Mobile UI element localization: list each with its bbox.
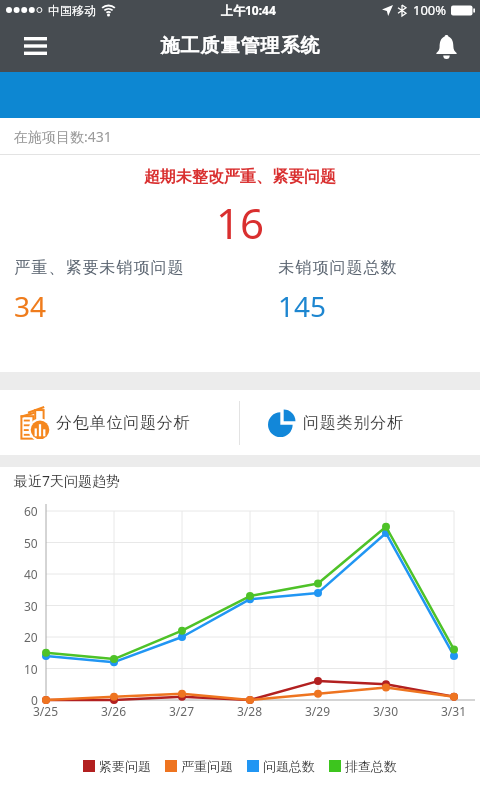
- button[interactable]: [13, 24, 57, 68]
- staticText: 16: [216, 194, 265, 251]
- staticText: 施工质量管理系统: [160, 34, 320, 58]
- staticText: 最近7天问题趋势: [14, 471, 121, 490]
- staticText: 在施项目数:431: [14, 127, 112, 146]
- button[interactable]: 分包单位问题分析: [0, 390, 239, 455]
- staticText: 未销项问题总数: [278, 258, 397, 278]
- staticText: 排查总数: [345, 758, 397, 774]
- button[interactable]: 严重问题: [165, 758, 233, 774]
- button[interactable]: 问题总数: [247, 758, 315, 774]
- staticText: 上午10:44: [221, 2, 276, 18]
- staticText: 问题总数: [263, 758, 315, 774]
- staticText: 145: [278, 287, 327, 325]
- staticText: 34: [14, 287, 47, 325]
- button[interactable]: [424, 24, 468, 68]
- staticText: 严重问题: [181, 758, 233, 774]
- button[interactable]: 问题类别分析: [240, 390, 480, 455]
- staticText: 超期未整改严重、紧要问题: [144, 167, 336, 187]
- button[interactable]: 紧要问题: [83, 758, 151, 774]
- staticText: 100%: [413, 1, 447, 19]
- staticText: 分包单位问题分析: [56, 413, 191, 433]
- button[interactable]: 排查总数: [329, 758, 397, 774]
- staticText: 问题类别分析: [303, 413, 404, 433]
- staticText: 严重、紧要未销项问题: [14, 258, 184, 278]
- staticText: 紧要问题: [99, 758, 151, 774]
- staticText: 中国移动: [48, 3, 96, 18]
